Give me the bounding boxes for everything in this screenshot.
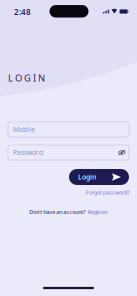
staticText: Don't have an account?: [29, 208, 85, 216]
staticText: Mobile: [13, 125, 35, 134]
staticText: L O G I N: [8, 72, 45, 84]
staticText: Forgot password?: [86, 189, 129, 196]
staticText: 2:48: [14, 7, 31, 17]
staticText: Password: [13, 148, 43, 157]
button[interactable]: Forgot password?: [86, 189, 129, 196]
staticText: Login: [78, 173, 96, 181]
button[interactable]: Register: [88, 208, 108, 216]
staticText: Register: [88, 208, 108, 216]
button[interactable]: Login: [69, 169, 129, 185]
